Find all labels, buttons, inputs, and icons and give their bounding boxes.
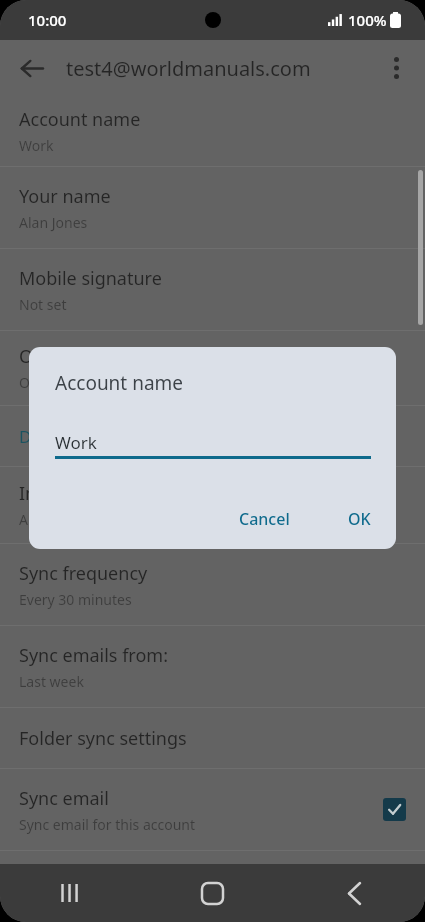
staticText: 10:00 [28,10,67,30]
staticText: Sync email for this account [19,815,196,834]
button[interactable]: Out of office reply [0,331,425,405]
button[interactable]: In-app notifications [0,467,425,543]
button[interactable]: Sync frequency [0,544,425,625]
staticText: Your name [19,184,111,209]
staticText: Every 30 minutes [19,590,132,609]
button[interactable]: Recents [0,864,141,922]
button[interactable]: Account name [0,96,425,166]
button[interactable]: Back [283,864,425,922]
staticText: Mobile signature [19,266,162,291]
button[interactable]: Your name [0,167,425,248]
staticText: Sync email [19,786,109,811]
staticText: test4@worldmanuals.com [66,55,311,82]
staticText: Account name [19,107,141,132]
button[interactable]: Delete account [0,406,425,466]
button[interactable]: Folder sync settings [0,708,425,768]
staticText: Last week [19,672,84,691]
staticText: Work [55,431,97,454]
staticText: Allowed [19,510,71,529]
button[interactable]: Home [141,864,283,922]
staticText: Folder sync settings [19,726,187,751]
button[interactable]: Cancel [229,501,300,537]
button[interactable]: More options [375,47,417,89]
staticText: Sync frequency [19,561,148,586]
button[interactable]: Mobile signature [0,249,425,330]
button[interactable]: OK [338,501,381,537]
staticText: Delete account [19,425,139,448]
staticText: OK [348,508,371,530]
staticText: Not set [19,295,67,314]
button[interactable]: Back [10,47,52,89]
staticText: Alan Jones [19,213,88,232]
staticText: Out of office reply [19,344,171,369]
staticText: Sync emails from: [19,643,168,668]
staticText: 100% [348,10,387,30]
button[interactable]: Sync emails from: [0,626,425,707]
staticText: In-app notifications [19,481,184,506]
staticText: Cancel [239,508,290,530]
staticText: Off [19,373,40,392]
staticText: Account name [55,370,184,396]
staticText: Work [19,136,54,155]
button[interactable]: Sync email [0,769,425,850]
